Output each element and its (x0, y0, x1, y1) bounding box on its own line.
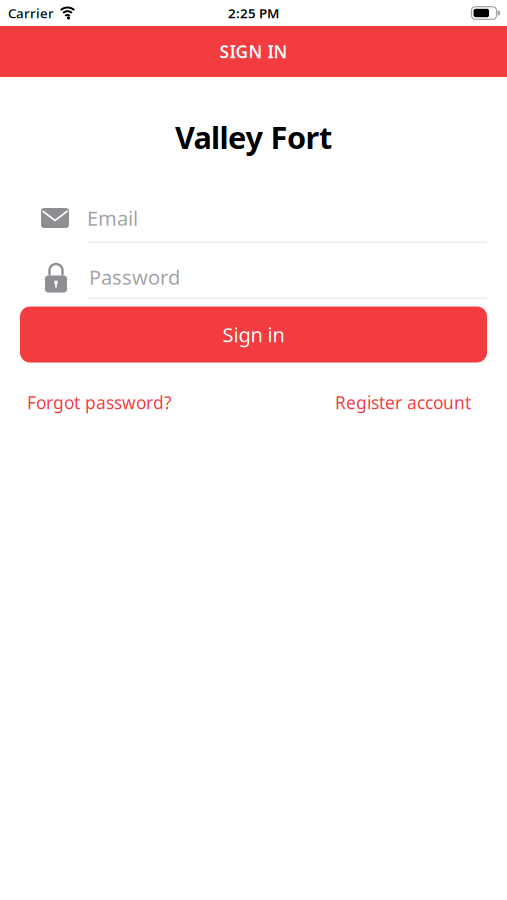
staticText: Register account (335, 391, 471, 414)
staticText: Email (87, 205, 138, 231)
button[interactable]: Register account (335, 391, 471, 414)
staticText: Carrier (8, 4, 54, 22)
button[interactable]: Sign in (20, 306, 487, 362)
staticText: 2:25 PM (228, 4, 279, 22)
button[interactable]: Password (0, 261, 507, 293)
staticText: Forgot password? (27, 391, 172, 414)
staticText: SIGN IN (219, 40, 287, 63)
button[interactable]: Email (0, 206, 507, 230)
staticText: Password (89, 264, 180, 290)
button[interactable]: Forgot password? (27, 391, 172, 414)
staticText: Sign in (222, 321, 284, 348)
staticText: Valley Fort (175, 117, 332, 157)
